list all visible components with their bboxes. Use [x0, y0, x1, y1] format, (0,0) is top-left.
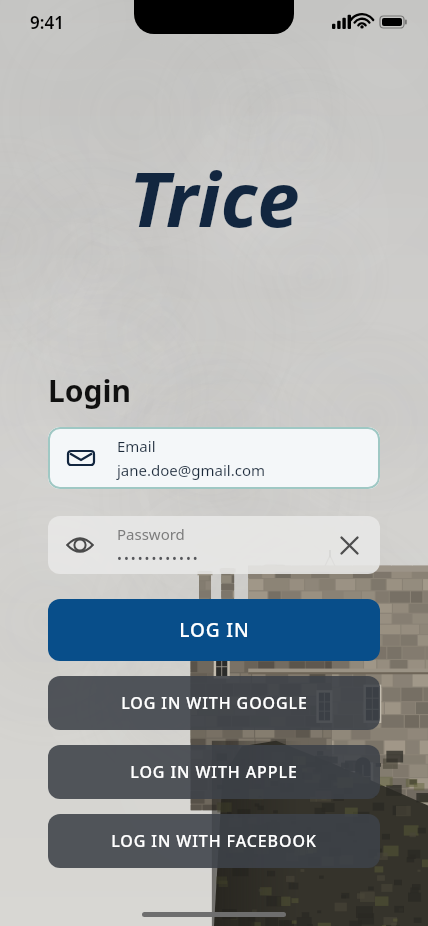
button[interactable]: LOG IN WITH APPLE [48, 745, 380, 799]
staticText: LOG IN [179, 617, 250, 643]
button[interactable]: LOG IN [48, 599, 380, 661]
button[interactable]: Clear password [332, 528, 366, 562]
staticText: •••••••••••• [117, 549, 200, 567]
staticText: Email [117, 436, 156, 456]
button[interactable]: LOG IN WITH GOOGLE [48, 676, 380, 730]
staticText: Login [48, 370, 131, 411]
button[interactable]: Show password [48, 516, 380, 574]
staticText: Password [117, 524, 185, 544]
button[interactable]: LOG IN WITH FACEBOOK [48, 814, 380, 868]
staticText: Trice [129, 146, 300, 250]
other: Show password [64, 533, 96, 557]
staticText: jane.doe@gmail.com [117, 460, 266, 480]
staticText: LOG IN WITH FACEBOOK [111, 830, 317, 852]
staticText: LOG IN WITH APPLE [130, 761, 298, 783]
staticText: 9:41 [30, 11, 64, 34]
button[interactable]: Email [48, 427, 380, 489]
staticText: LOG IN WITH GOOGLE [121, 692, 308, 714]
